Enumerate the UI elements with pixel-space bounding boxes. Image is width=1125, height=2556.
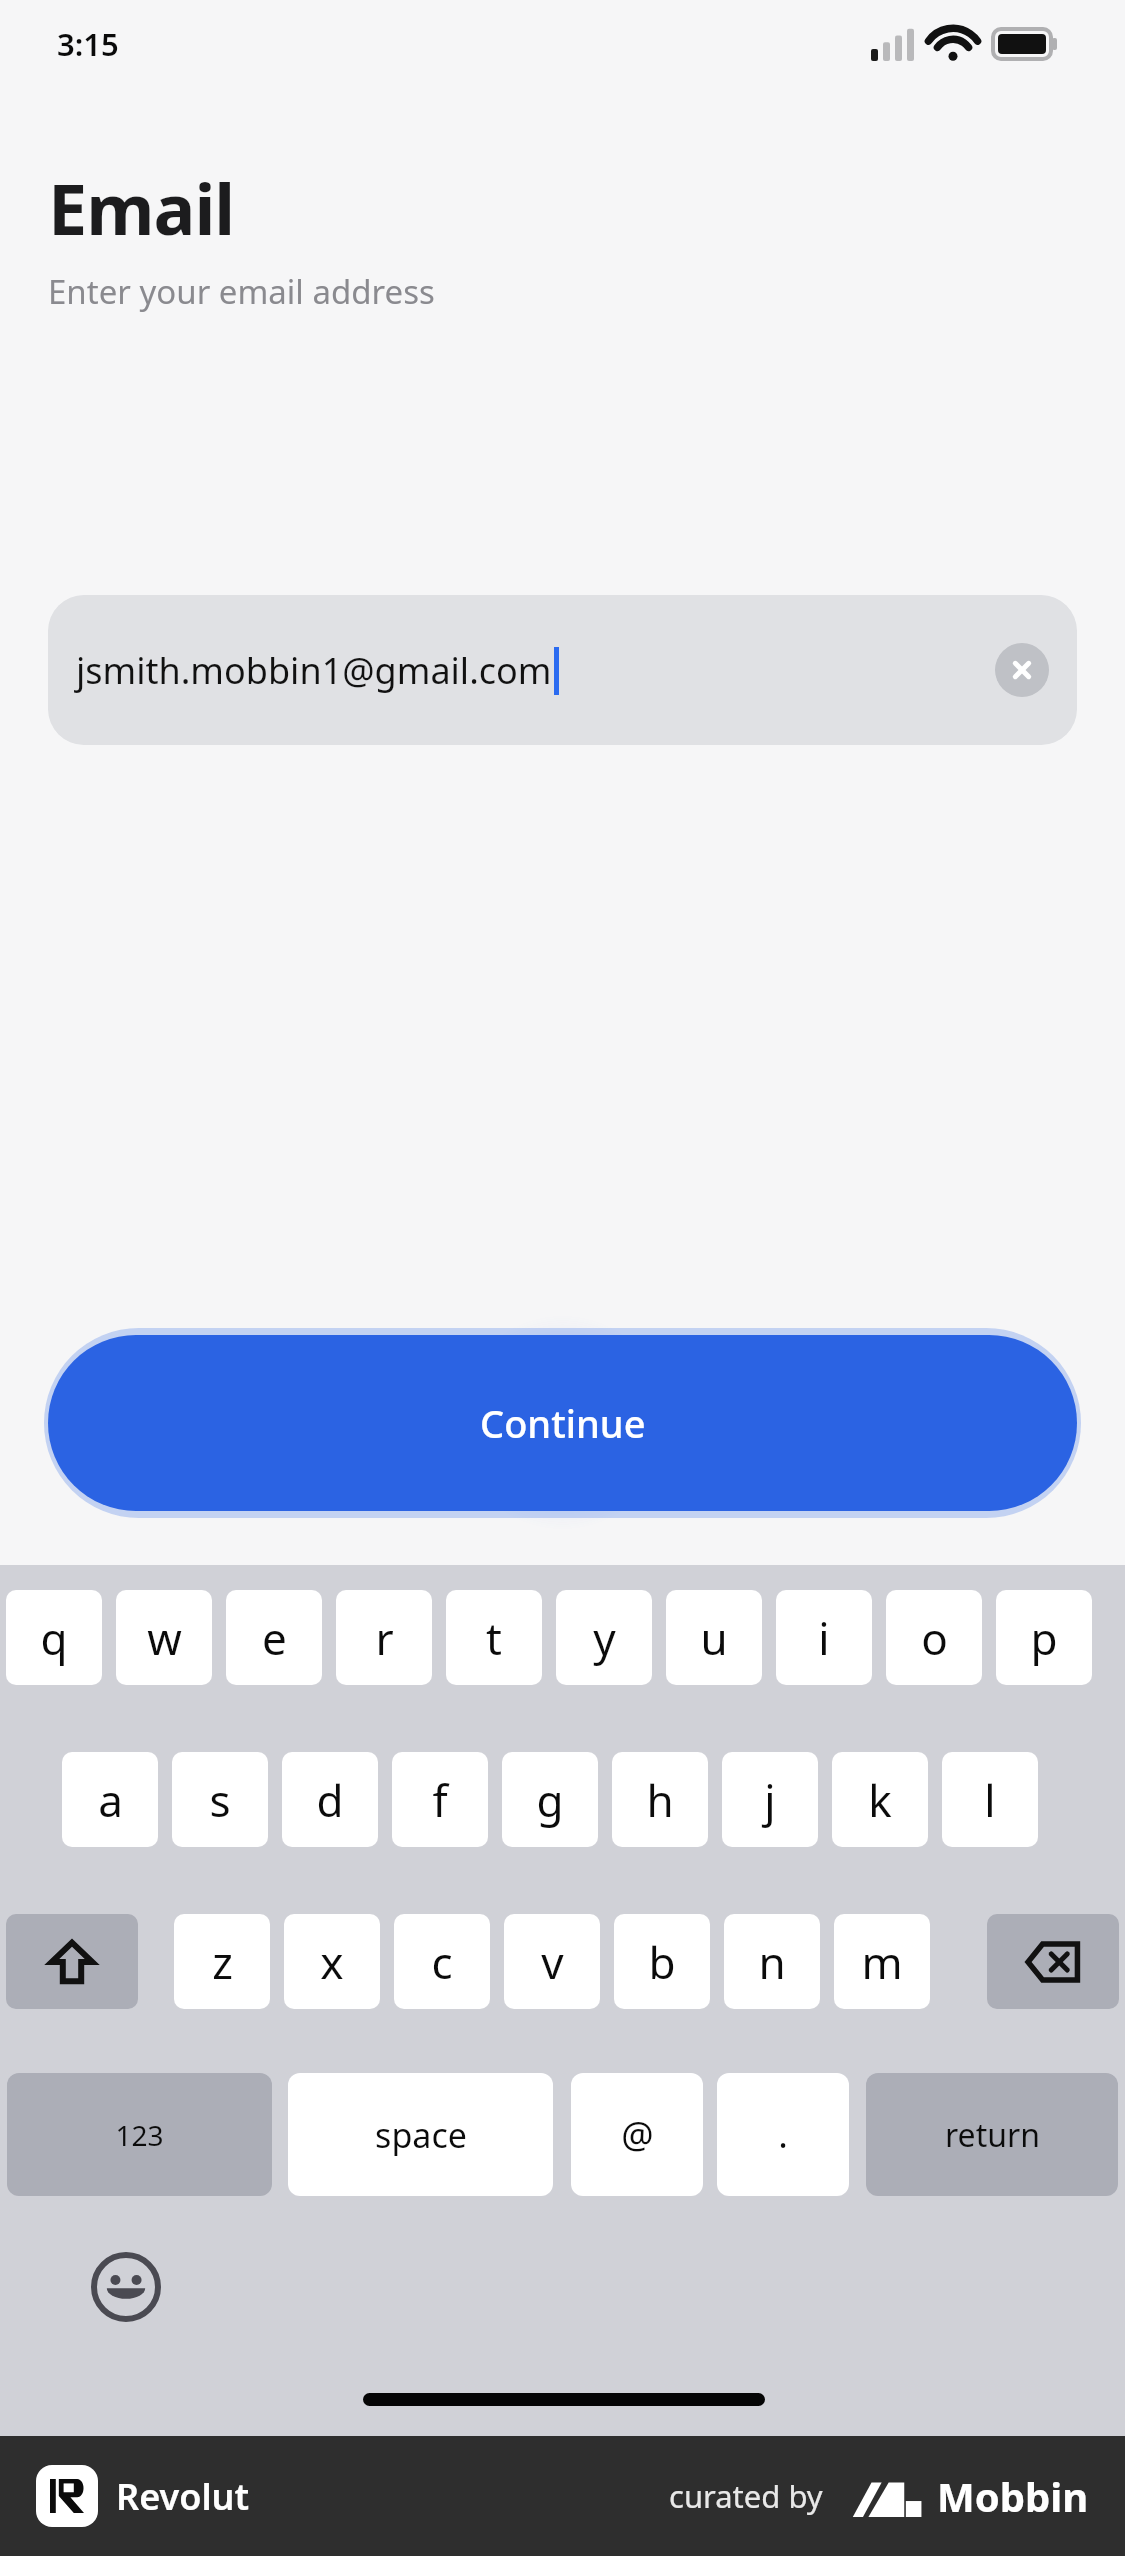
staticText: r — [375, 1608, 394, 1668]
staticText: a — [98, 1770, 123, 1830]
button[interactable]: r — [336, 1590, 432, 1685]
button[interactable]: h — [612, 1752, 708, 1847]
button[interactable]: space — [288, 2073, 553, 2196]
staticText: Email — [48, 160, 235, 255]
button[interactable]: f — [392, 1752, 488, 1847]
button[interactable]: m — [834, 1914, 930, 2009]
button[interactable]: Emoji keyboard — [84, 2245, 168, 2329]
staticText: 123 — [115, 2116, 164, 2154]
button[interactable]: g — [502, 1752, 598, 1847]
staticText: curated by — [669, 2475, 823, 2517]
button[interactable]: y — [556, 1590, 652, 1685]
button[interactable]: w — [116, 1590, 212, 1685]
button[interactable]: Continue — [48, 1335, 1077, 1511]
staticText: l — [984, 1770, 996, 1830]
staticText: k — [868, 1770, 892, 1830]
button[interactable]: e — [226, 1590, 322, 1685]
button[interactable]: d — [282, 1752, 378, 1847]
button[interactable]: x — [284, 1914, 380, 2009]
staticText: return — [945, 2113, 1040, 2157]
staticText: n — [758, 1932, 786, 1992]
button[interactable]: c — [394, 1914, 490, 2009]
button[interactable]: return — [866, 2073, 1118, 2196]
staticText: c — [431, 1932, 453, 1992]
staticText: m — [861, 1932, 903, 1992]
staticText: i — [818, 1608, 830, 1668]
button[interactable]: q — [6, 1590, 102, 1685]
button[interactable]: s — [172, 1752, 268, 1847]
staticText: b — [648, 1932, 676, 1992]
button[interactable]: Backspace — [987, 1914, 1119, 2009]
button[interactable]: @ — [571, 2073, 703, 2196]
button[interactable]: p — [996, 1590, 1092, 1685]
button[interactable]: b — [614, 1914, 710, 2009]
button[interactable]: jsmith.mobbin1@gmail.com — [48, 595, 1077, 745]
staticText: u — [700, 1608, 728, 1668]
button[interactable]: v — [504, 1914, 600, 2009]
button[interactable]: i — [776, 1590, 872, 1685]
staticText: t — [486, 1608, 502, 1668]
staticText: f — [432, 1770, 448, 1830]
button[interactable]: k — [832, 1752, 928, 1847]
staticText: h — [646, 1770, 674, 1830]
staticText: d — [316, 1770, 344, 1830]
button[interactable]: u — [666, 1590, 762, 1685]
staticText: j — [764, 1770, 776, 1830]
staticText: 3:15 — [57, 23, 119, 65]
staticText: x — [320, 1932, 344, 1992]
staticText: w — [147, 1608, 182, 1668]
staticText: z — [212, 1932, 233, 1992]
staticText: jsmith.mobbin1@gmail.com — [76, 646, 552, 695]
staticText: o — [921, 1608, 948, 1668]
staticText: Revolut — [116, 2472, 250, 2521]
button[interactable]: a — [62, 1752, 158, 1847]
staticText: @ — [621, 2110, 654, 2159]
staticText: Continue — [480, 1397, 646, 1449]
staticText: . — [778, 2110, 788, 2159]
button[interactable]: Clear text — [995, 643, 1049, 697]
button[interactable]: l — [942, 1752, 1038, 1847]
button[interactable]: j — [722, 1752, 818, 1847]
button[interactable]: Shift — [6, 1914, 138, 2009]
button[interactable]: o — [886, 1590, 982, 1685]
staticText: Enter your email address — [48, 269, 435, 314]
button[interactable]: n — [724, 1914, 820, 2009]
staticText: v — [541, 1932, 564, 1992]
button[interactable]: . — [717, 2073, 849, 2196]
staticText: space — [375, 2112, 467, 2158]
staticText: s — [209, 1770, 231, 1830]
staticText: Mobbin — [937, 2469, 1089, 2523]
button[interactable]: 123 — [7, 2073, 272, 2196]
button[interactable]: t — [446, 1590, 542, 1685]
staticText: y — [593, 1608, 616, 1668]
staticText: p — [1030, 1608, 1058, 1668]
staticText: q — [40, 1608, 68, 1668]
staticText: g — [536, 1770, 564, 1830]
button[interactable]: z — [174, 1914, 270, 2009]
staticText: e — [262, 1608, 287, 1668]
